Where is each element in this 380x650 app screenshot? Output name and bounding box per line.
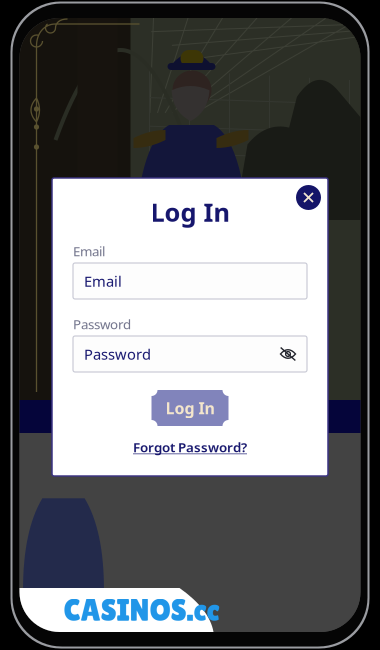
button[interactable]: Email <box>73 263 307 299</box>
staticText: Email <box>84 271 122 291</box>
staticText: Password <box>84 344 151 364</box>
staticText: Email <box>73 242 105 260</box>
staticText: Forgot Password? <box>133 438 247 456</box>
staticText: Log In <box>165 397 214 419</box>
button[interactable]: Log In <box>151 390 228 426</box>
button[interactable]: Password <box>73 336 307 372</box>
staticText: Log In <box>150 195 229 229</box>
staticText: CASINOS.cc <box>63 592 219 628</box>
staticText: Password <box>73 315 131 333</box>
button[interactable]: Close <box>293 182 324 213</box>
button[interactable]: Forgot Password? <box>133 440 247 454</box>
